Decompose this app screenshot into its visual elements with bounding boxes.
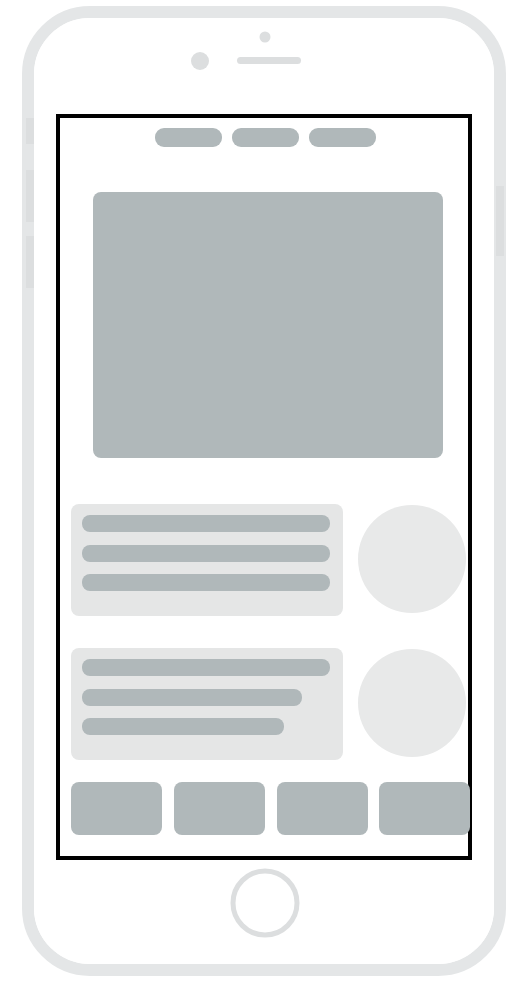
- button[interactable]: List item 1: [71, 504, 343, 616]
- button[interactable]: Tab 3: [309, 128, 376, 147]
- button[interactable]: Tab 2: [232, 128, 299, 147]
- button[interactable]: Nav 3: [277, 782, 368, 835]
- button[interactable]: Thumbnail 1: [358, 505, 466, 613]
- button[interactable]: Tab 1: [155, 128, 222, 147]
- button[interactable]: Nav 4: [379, 782, 470, 835]
- button[interactable]: Nav 1: [71, 782, 162, 835]
- button[interactable]: Thumbnail 2: [358, 649, 466, 757]
- button[interactable]: Nav 2: [174, 782, 265, 835]
- button[interactable]: List item 2: [71, 648, 343, 760]
